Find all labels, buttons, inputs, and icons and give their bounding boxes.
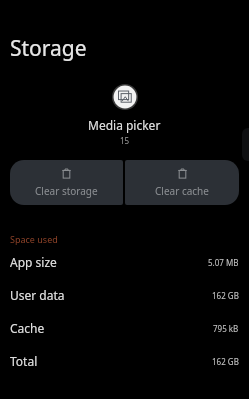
staticText: Clear cache xyxy=(155,184,209,198)
staticText: 15 xyxy=(120,135,130,146)
staticText: Clear storage xyxy=(35,184,98,198)
button[interactable]: Total xyxy=(0,353,249,369)
staticText: App size xyxy=(10,254,57,270)
staticText: 162 GB xyxy=(212,290,239,301)
button[interactable]: Clear storage xyxy=(10,160,123,205)
button[interactable]: Cache xyxy=(0,320,249,336)
staticText: Space used xyxy=(10,233,58,245)
staticText: Media picker xyxy=(88,117,161,133)
staticText: 795 kB xyxy=(213,323,239,334)
staticText: Cache xyxy=(10,320,45,336)
staticText: Storage xyxy=(10,34,87,63)
staticText: 162 GB xyxy=(212,356,239,367)
button[interactable]: Clear cache xyxy=(125,160,239,205)
button[interactable]: User data xyxy=(0,287,249,303)
staticText: Total xyxy=(10,353,38,369)
staticText: 5.07 MB xyxy=(208,257,239,268)
button[interactable]: App size xyxy=(0,254,249,270)
staticText: User data xyxy=(10,287,65,303)
